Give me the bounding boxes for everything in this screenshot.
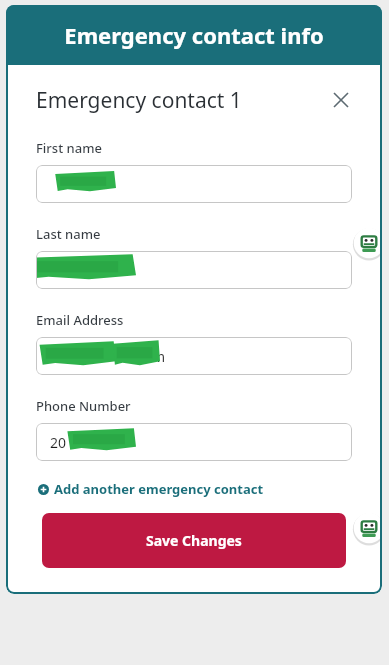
staticText: First name: [36, 139, 102, 157]
staticText: Emergency contact 1: [36, 86, 326, 115]
button[interactable]: Autofill: [352, 226, 382, 260]
button[interactable]: Close: [326, 85, 356, 115]
staticText: Save Changes: [146, 531, 242, 550]
staticText: Email Address: [36, 311, 124, 329]
staticText: Add another emergency contact: [54, 480, 264, 498]
staticText: Phone Number: [36, 397, 131, 415]
staticText: 20: [50, 433, 67, 452]
button[interactable]: Add another emergency contact: [36, 477, 266, 501]
button[interactable]: Autofill: [352, 511, 382, 545]
button[interactable]: b @ .com: [36, 337, 352, 375]
button[interactable]: [36, 165, 352, 203]
button[interactable]: Save Changes: [42, 513, 346, 568]
button[interactable]: 20: [36, 423, 352, 461]
staticText: Emergency contact info: [64, 20, 324, 50]
staticText: Last name: [36, 225, 101, 243]
button[interactable]: [36, 251, 352, 289]
staticText: b @ .com: [50, 347, 166, 366]
